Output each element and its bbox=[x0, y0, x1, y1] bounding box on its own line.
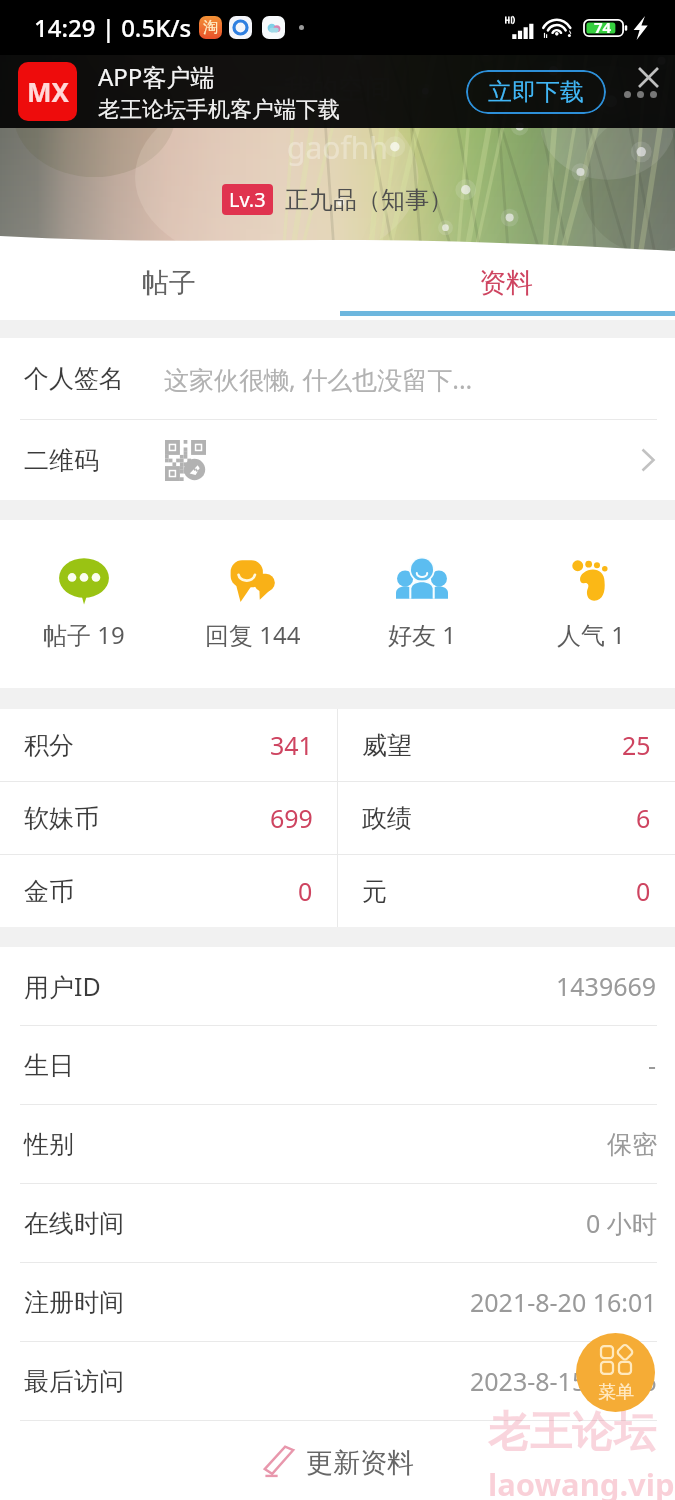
staticText: 菜单 bbox=[598, 1381, 634, 1404]
staticText: 资料 bbox=[479, 266, 533, 300]
staticText: 帖子 19 bbox=[43, 618, 125, 651]
button[interactable]: 菜单 bbox=[576, 1333, 655, 1412]
staticText: APP客户端 bbox=[98, 60, 215, 93]
staticText: 74 bbox=[594, 17, 612, 37]
button[interactable]: 好友 1 bbox=[337, 520, 506, 688]
button[interactable]: 资料 bbox=[337, 253, 675, 313]
button[interactable]: MX bbox=[18, 62, 77, 121]
staticText: 积分 bbox=[24, 730, 74, 761]
staticText: 老王论坛手机客户端下载 bbox=[98, 96, 340, 124]
staticText: - bbox=[648, 1048, 657, 1082]
staticText: 元 bbox=[362, 876, 387, 907]
staticText: 2023-8-15 16:06 bbox=[470, 1364, 657, 1398]
staticText: 老王论坛 bbox=[488, 1406, 656, 1459]
button[interactable]: 回复 144 bbox=[168, 520, 337, 688]
button[interactable]: 元 bbox=[338, 855, 675, 927]
staticText: 这家伙很懒, 什么也没留下... bbox=[164, 362, 473, 396]
staticText: Lv.3 bbox=[229, 186, 266, 213]
button[interactable]: 关闭 bbox=[630, 59, 666, 95]
staticText: 立即下载 bbox=[488, 77, 584, 107]
staticText: 淘 bbox=[203, 18, 218, 37]
staticText: 正九品（知事） bbox=[285, 185, 453, 215]
button[interactable]: 积分 bbox=[0, 709, 337, 781]
staticText: 最后访问 bbox=[24, 1366, 124, 1397]
button[interactable]: 更新资料 bbox=[262, 1446, 414, 1480]
button[interactable]: 二维码 bbox=[0, 420, 675, 500]
staticText: 个人签名 bbox=[24, 363, 124, 394]
staticText: 在线时间 bbox=[24, 1208, 124, 1239]
staticText: 2021-8-20 16:01 bbox=[470, 1285, 657, 1319]
staticText: 政绩 bbox=[362, 803, 412, 834]
staticText: 699 bbox=[270, 801, 313, 835]
staticText: MX bbox=[27, 74, 69, 109]
staticText: 更新资料 bbox=[306, 1446, 414, 1480]
staticText: 金币 bbox=[24, 876, 74, 907]
button[interactable]: 立即下载 bbox=[466, 70, 606, 114]
button[interactable]: 性别 bbox=[0, 1105, 675, 1183]
button[interactable]: 在线时间 bbox=[0, 1184, 675, 1262]
button[interactable]: 最后访问 bbox=[0, 1342, 675, 1420]
button[interactable]: 注册时间 bbox=[0, 1263, 675, 1341]
staticText: 生日 bbox=[24, 1050, 74, 1081]
staticText: 0 小时 bbox=[586, 1206, 657, 1240]
button[interactable]: 政绩 bbox=[338, 782, 675, 854]
staticText: 保密 bbox=[607, 1129, 657, 1160]
staticText: 软妹币 bbox=[24, 803, 99, 834]
staticText: 好友 1 bbox=[388, 618, 456, 651]
button[interactable]: 人气 1 bbox=[506, 520, 675, 688]
staticText: 用户ID bbox=[24, 969, 101, 1003]
button[interactable]: 软妹币 bbox=[0, 782, 337, 854]
staticText: 1439669 bbox=[556, 969, 657, 1003]
staticText: 0 bbox=[298, 874, 313, 908]
staticText: 回复 144 bbox=[205, 618, 301, 651]
staticText: 我的空间 bbox=[284, 72, 392, 106]
staticText: 性别 bbox=[24, 1129, 74, 1160]
staticText: 341 bbox=[270, 728, 313, 762]
staticText: 帖子 bbox=[142, 266, 196, 300]
button[interactable]: 威望 bbox=[338, 709, 675, 781]
staticText: 威望 bbox=[362, 730, 412, 761]
staticText: 注册时间 bbox=[24, 1287, 124, 1318]
staticText: 二维码 bbox=[24, 445, 99, 476]
button[interactable]: 个人签名 bbox=[0, 338, 675, 419]
button[interactable]: 生日 bbox=[0, 1026, 675, 1104]
button[interactable]: 更多 bbox=[624, 91, 657, 98]
button[interactable]: 帖子 bbox=[0, 253, 337, 313]
button[interactable]: 用户ID bbox=[0, 947, 675, 1025]
staticText: gaofhh bbox=[287, 127, 388, 168]
staticText: 25 bbox=[622, 728, 651, 762]
staticText: 人气 1 bbox=[557, 618, 625, 651]
staticText: 0 bbox=[636, 874, 651, 908]
staticText: laowang.vip bbox=[488, 1463, 675, 1500]
button[interactable]: 金币 bbox=[0, 855, 337, 927]
staticText: 6 bbox=[636, 801, 651, 835]
button[interactable]: 帖子 19 bbox=[0, 520, 168, 688]
staticText: 14:29 | 0.5K/s bbox=[34, 11, 192, 44]
